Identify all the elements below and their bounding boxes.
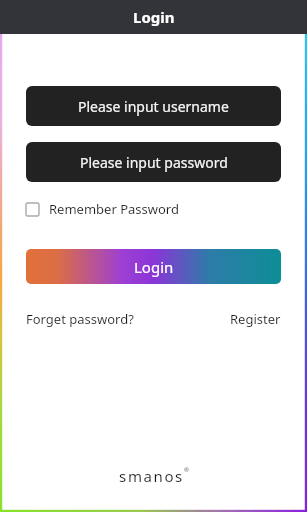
staticText: Login — [133, 7, 175, 27]
staticText: ® — [184, 466, 189, 474]
button[interactable]: Please input username — [26, 86, 281, 126]
staticText: Please input username — [78, 97, 229, 116]
button[interactable]: Register — [230, 306, 281, 332]
staticText: Forget password? — [26, 310, 134, 328]
button[interactable]: Please input password — [26, 142, 281, 182]
button[interactable]: Remember Password — [26, 196, 179, 222]
staticText: Please input password — [80, 153, 228, 172]
staticText: Register — [230, 310, 281, 328]
staticText: Remember Password — [49, 200, 179, 218]
staticText: Login — [134, 257, 174, 277]
button[interactable]: Login — [26, 249, 281, 284]
button[interactable]: Forget password? — [26, 306, 134, 332]
staticText: smanos — [119, 466, 184, 486]
